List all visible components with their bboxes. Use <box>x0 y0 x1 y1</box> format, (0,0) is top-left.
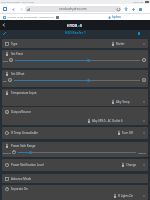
button[interactable]: coralvuehydros.com <box>25 6 121 12</box>
button[interactable]: Power Safe Range <box>2 142 148 157</box>
button[interactable]: Temperature Input <box>2 89 148 106</box>
staticText: Set Point <box>11 52 24 56</box>
button[interactable]: Menu <box>136 31 141 36</box>
staticText: ±0.2 W <box>3 151 11 154</box>
staticText: Power Notification Level <box>11 163 44 167</box>
button[interactable]: Separate On <box>2 185 148 200</box>
staticText: 78.5 <box>3 59 8 62</box>
button[interactable]: Alky Temp <box>111 99 145 105</box>
button[interactable]: Reefer <box>111 41 145 47</box>
staticText: Temperature Input <box>11 91 37 95</box>
button[interactable]: If Lights On <box>113 193 145 199</box>
button[interactable]: New tab <box>130 6 136 12</box>
staticText: If Temp Unavailable <box>11 131 38 135</box>
button[interactable]: Output/Source <box>2 107 148 125</box>
staticText: Set Offset <box>11 72 25 76</box>
staticText: Change <box>126 163 137 167</box>
button[interactable]: Advance Mode <box>2 174 148 183</box>
staticText: 10:14 AM <box>133 1 144 4</box>
button[interactable]: Back <box>1 22 7 28</box>
staticText: Reefer <box>116 42 125 46</box>
staticText: S <box>80 23 83 28</box>
button[interactable]: Power Notification Level <box>2 159 148 171</box>
staticText: CV Dive: AI Sky Hydros Rules | CoralVue … <box>8 16 54 19</box>
staticText: H2O Reefer 1 <box>65 31 86 35</box>
button[interactable]: Share <box>123 6 129 12</box>
staticText: Advance Mode <box>11 177 32 181</box>
button[interactable]: Tab group <box>2 6 8 12</box>
staticText: HYDR <box>67 23 78 28</box>
button[interactable]: Change <box>121 162 145 168</box>
button[interactable]: Set Offset <box>2 70 148 87</box>
staticText: Turn Off <box>122 131 133 135</box>
staticText: hydros <box>112 15 121 19</box>
staticText: 18.0 W <box>138 151 146 154</box>
staticText: coralvuehydros.com <box>59 7 87 11</box>
staticText: Alky XP8.0 - AC Outlet 6 <box>92 119 123 123</box>
button[interactable]: Forward <box>18 6 24 12</box>
staticText: Type <box>11 42 18 46</box>
button[interactable]: If Temp Unavailable <box>2 127 148 139</box>
staticText: 0.5 <box>3 79 7 82</box>
button[interactable]: Turn Off <box>117 130 145 136</box>
button[interactable]: Tabs <box>137 6 143 12</box>
staticText: Output/Source <box>11 110 32 114</box>
staticText: Alky Temp <box>116 100 130 104</box>
button[interactable]: Type <box>2 39 148 48</box>
staticText: CoralVue HYDROS Sky Hydros <box>1 1 35 4</box>
button[interactable]: Set Point <box>2 50 148 68</box>
staticText: Separate On <box>11 187 28 191</box>
button[interactable]: Edit <box>2 31 7 36</box>
staticText: If Lights On <box>118 194 134 198</box>
staticText: S <box>4 16 6 19</box>
button[interactable]: Back <box>10 6 16 12</box>
button[interactable]: Alky XP8.0 - AC Outlet 6 <box>87 118 145 124</box>
staticText: Power Safe Range <box>11 144 36 148</box>
